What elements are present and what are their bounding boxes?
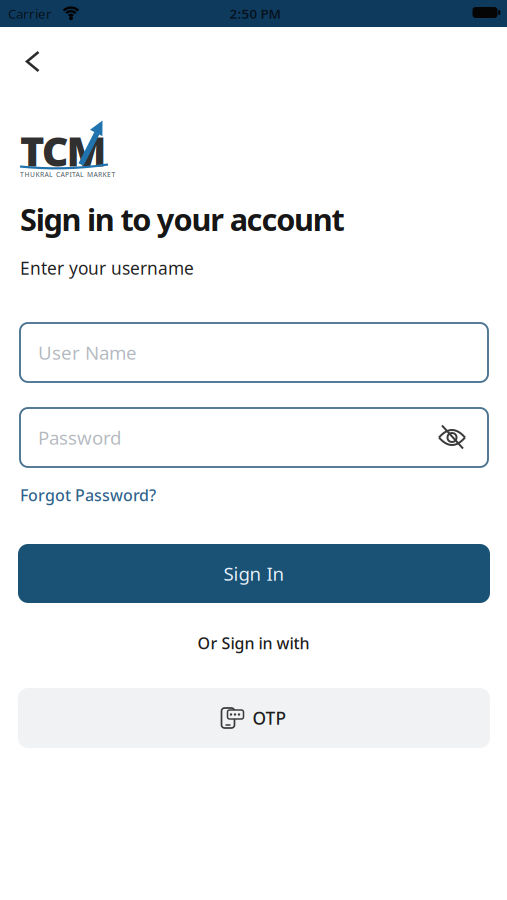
staticText: Sign In bbox=[223, 561, 284, 586]
button[interactable]: User Name bbox=[20, 323, 488, 382]
button[interactable]: Forgot Password? bbox=[20, 480, 156, 510]
staticText: Carrier bbox=[8, 5, 52, 22]
button[interactable]: Password bbox=[20, 408, 488, 467]
staticText: Enter your username bbox=[20, 256, 194, 279]
staticText: OTP bbox=[252, 706, 286, 729]
staticText: Forgot Password? bbox=[20, 484, 156, 506]
staticText: User Name bbox=[38, 340, 137, 365]
staticText: Or Sign in with bbox=[197, 632, 309, 654]
button[interactable]: OTP bbox=[18, 688, 490, 748]
staticText: TCM bbox=[20, 123, 107, 178]
staticText: THUKRAL CAPITAL MARKET bbox=[20, 170, 115, 179]
button[interactable] bbox=[11, 40, 55, 84]
staticText: Sign in to your account bbox=[20, 199, 345, 239]
button[interactable]: Sign In bbox=[18, 544, 490, 603]
staticText: 2:50 PM bbox=[229, 5, 280, 22]
staticText: Password bbox=[38, 425, 121, 450]
